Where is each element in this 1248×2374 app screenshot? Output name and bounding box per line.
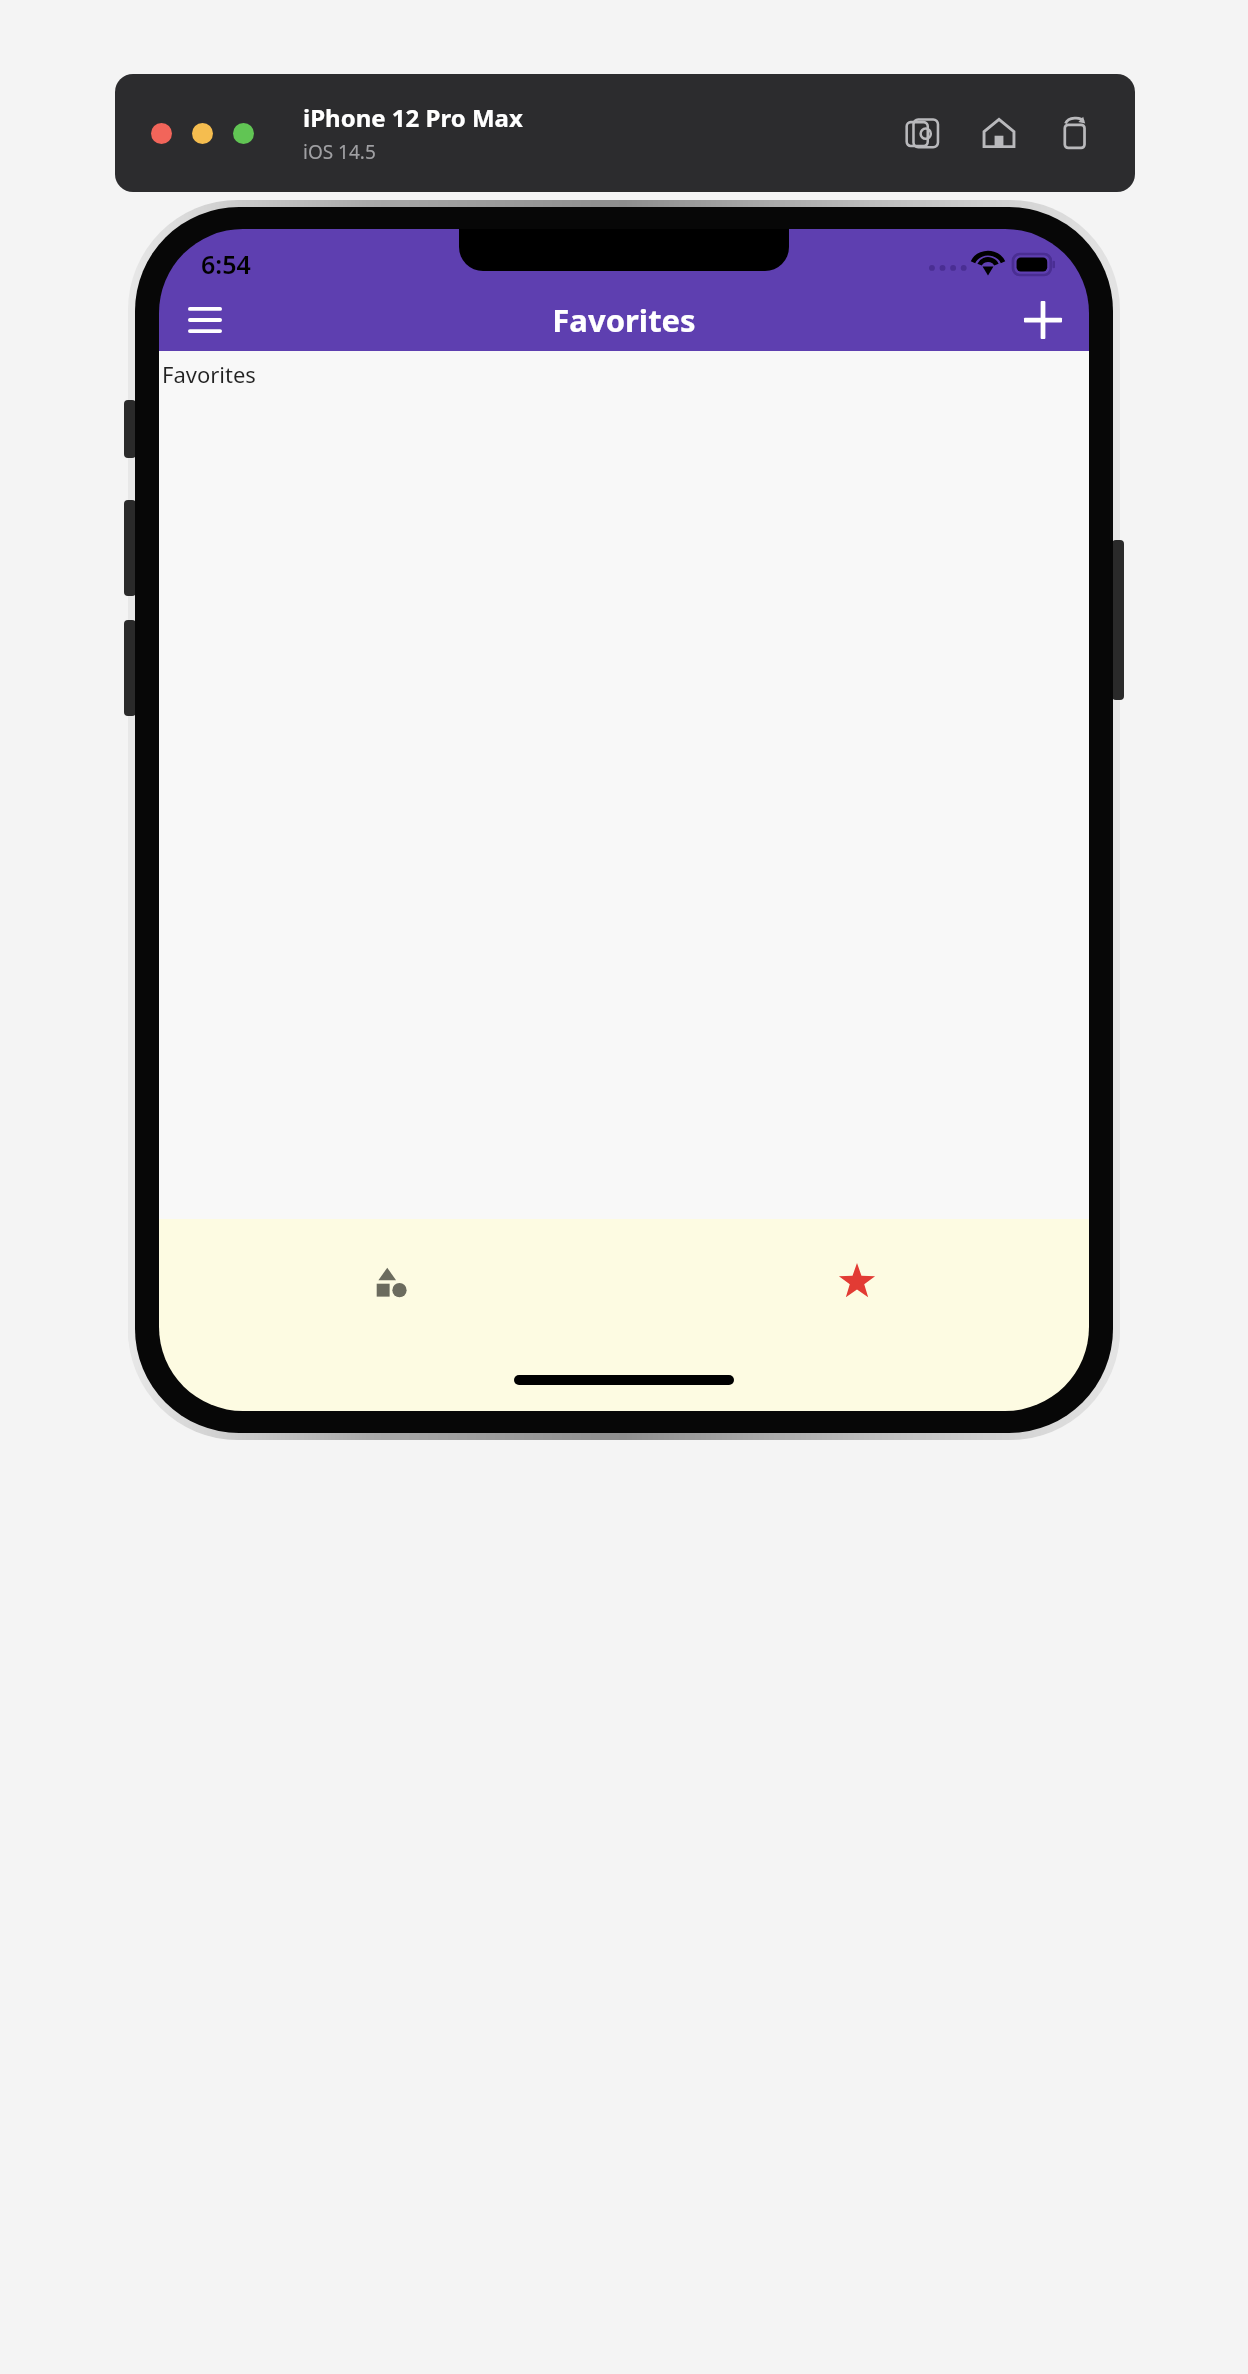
staticText: Favorites: [162, 359, 256, 389]
staticText: iPhone 12 Pro Max: [303, 101, 523, 134]
button[interactable]: Shapes: [159, 1237, 624, 1327]
button[interactable]: Open navigation menu: [177, 292, 233, 348]
button[interactable]: Window control: [151, 123, 172, 144]
button[interactable]: Home: [977, 111, 1021, 155]
button[interactable]: Rotate: [1053, 111, 1097, 155]
staticText: 6:54: [201, 247, 251, 281]
button[interactable]: Add favorite: [1015, 292, 1071, 348]
button[interactable]: Window control: [233, 123, 254, 144]
button[interactable]: Window control: [192, 123, 213, 144]
staticText: iOS 14.5: [303, 139, 376, 165]
button[interactable]: Screenshot: [901, 111, 945, 155]
staticText: Favorites: [552, 299, 696, 341]
button[interactable]: Favorites: [624, 1237, 1089, 1327]
